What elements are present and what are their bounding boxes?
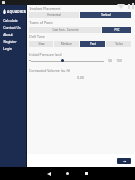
staticText: AQUADRIM xyxy=(7,10,28,14)
staticText: Computed Volume (cu ft) xyxy=(29,68,70,72)
button[interactable]: Recent apps xyxy=(77,167,96,180)
staticText: Register xyxy=(3,39,17,44)
staticText: Implant Placement xyxy=(29,6,61,10)
staticText: Turbo xyxy=(115,42,123,46)
button[interactable]: Back xyxy=(39,167,58,180)
staticText: Initial Pressure (psi) xyxy=(29,52,62,56)
button[interactable]: Contact Us xyxy=(0,24,26,31)
button[interactable]: Pressure slider xyxy=(61,59,64,62)
button[interactable]: Next xyxy=(117,158,131,164)
button[interactable]: Turbo xyxy=(106,41,131,47)
button[interactable]: Slow xyxy=(29,41,53,47)
staticText: Types of Pipes xyxy=(29,20,53,24)
staticText: Fast xyxy=(90,42,96,46)
button[interactable]: Home xyxy=(58,167,77,180)
staticText: Calculate xyxy=(3,18,18,23)
staticText: About xyxy=(3,32,13,37)
staticText: Contact Us xyxy=(3,25,21,30)
staticText: Drill Type xyxy=(29,34,45,38)
staticText: 50 xyxy=(108,59,112,63)
staticText: Medium xyxy=(61,42,72,46)
button[interactable]: Calculate xyxy=(0,17,26,24)
button[interactable]: Cast Iron - Concrete xyxy=(29,27,101,33)
staticText: Slow xyxy=(38,42,45,46)
button[interactable]: PVC xyxy=(102,27,131,33)
button[interactable]: Medium xyxy=(54,41,79,47)
staticText: Cast Iron - Concrete xyxy=(52,28,79,32)
button[interactable]: Login xyxy=(0,45,26,52)
button[interactable]: About xyxy=(0,31,26,38)
staticText: 100 xyxy=(116,59,122,63)
button[interactable]: Vertical xyxy=(80,12,131,18)
staticText: 0.00 xyxy=(77,75,84,79)
button[interactable]: Register xyxy=(0,38,26,45)
staticText: Login xyxy=(3,46,12,51)
button[interactable]: Horizontal xyxy=(29,12,79,18)
staticText: Vertical xyxy=(101,13,111,17)
button[interactable]: Fast xyxy=(80,41,105,47)
staticText: PVC xyxy=(114,28,120,32)
staticText: Horizontal xyxy=(47,13,61,17)
